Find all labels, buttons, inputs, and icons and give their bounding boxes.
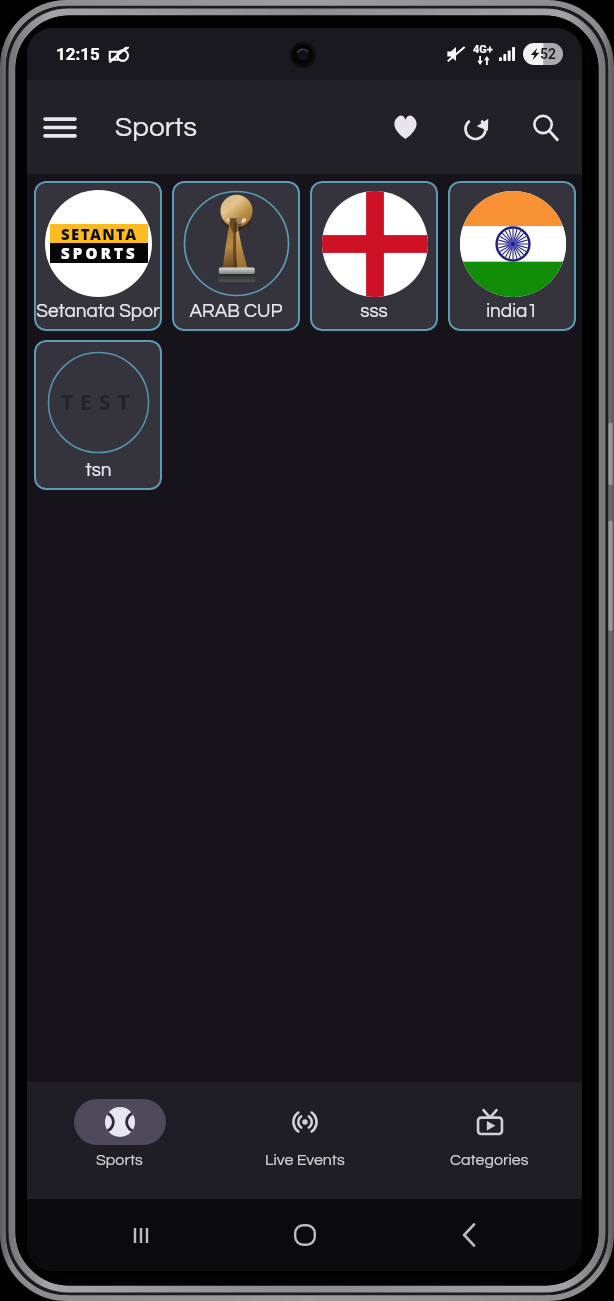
staticText: SETANTA (61, 224, 138, 243)
staticText: Setanata Sports (36, 301, 160, 321)
staticText: Categories (450, 1152, 529, 1168)
staticText: ARAB CUP (189, 301, 283, 321)
staticText: Live Events (265, 1152, 345, 1168)
staticText: 12:15 (56, 44, 100, 64)
button[interactable]: Search (510, 89, 580, 165)
button[interactable]: Live Events (212, 1082, 397, 1199)
button[interactable]: Home (223, 1199, 387, 1271)
button[interactable]: sss (310, 181, 438, 331)
staticText: sss (360, 301, 388, 321)
button[interactable]: Refresh (440, 89, 510, 165)
staticText: TEST (61, 388, 137, 417)
button[interactable]: Sports (27, 1082, 212, 1199)
staticText: 4G+ (473, 43, 493, 56)
button[interactable]: Back (387, 1199, 551, 1271)
button[interactable]: ARAB CUP (172, 181, 300, 331)
button[interactable]: Categories (397, 1082, 582, 1199)
staticText: Sports (96, 1152, 143, 1168)
button[interactable]: SETANTA (34, 181, 162, 331)
button[interactable]: Favorites (370, 89, 440, 165)
staticText: 52 (540, 46, 557, 62)
button[interactable]: india1 (448, 181, 576, 331)
staticText: SPORTS (61, 243, 138, 263)
button[interactable]: Recents (58, 1199, 223, 1271)
staticText: Sports (115, 113, 197, 142)
button[interactable]: TEST (34, 340, 162, 490)
staticText: india1 (486, 301, 538, 321)
button[interactable]: Menu (27, 90, 93, 164)
staticText: tsn (85, 460, 112, 480)
